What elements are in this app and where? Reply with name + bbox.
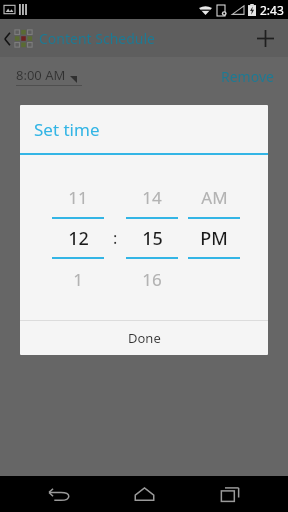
staticText: PM <box>200 226 228 251</box>
staticText: : <box>113 227 118 249</box>
staticText: Remove <box>221 67 274 86</box>
staticText: 15 <box>142 226 163 251</box>
staticText: Content Schedule <box>39 29 155 48</box>
staticText: Done <box>128 329 161 347</box>
staticText: 14 <box>142 186 162 209</box>
staticText: 2:43 <box>260 2 284 18</box>
staticText: 12 <box>68 226 89 251</box>
button[interactable]: Recent apps <box>202 476 258 512</box>
button[interactable]: 11 <box>52 177 104 299</box>
button[interactable]: Remove <box>207 61 288 92</box>
button[interactable]: Add <box>242 19 288 57</box>
button[interactable]: 8:00 AM <box>16 66 82 86</box>
staticText: 8:00 AM <box>16 66 66 84</box>
staticText: AM <box>201 186 228 209</box>
staticText: 1 <box>73 268 83 291</box>
button[interactable]: Back <box>30 476 86 512</box>
staticText: 16 <box>142 268 162 291</box>
button[interactable]: AM <box>188 177 240 299</box>
staticText: Set time <box>34 118 100 141</box>
button[interactable]: 14 <box>126 177 178 299</box>
button[interactable]: Home <box>116 476 172 512</box>
button[interactable]: Up, Content Schedule <box>0 29 161 48</box>
button[interactable]: Done <box>20 321 268 355</box>
staticText: 11 <box>68 186 88 209</box>
